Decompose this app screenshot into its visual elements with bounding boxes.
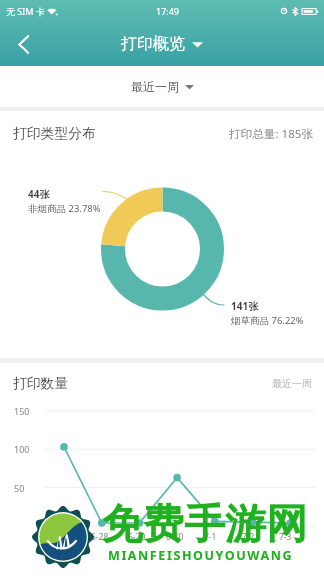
staticText: 非烟商品 23.78% bbox=[28, 202, 101, 215]
staticText: 141张 bbox=[231, 299, 259, 313]
staticText: 最近一周 bbox=[131, 79, 179, 94]
staticText: 打印概览 bbox=[121, 34, 185, 54]
staticText: 6-28 bbox=[91, 531, 109, 543]
staticText: 44张 bbox=[28, 187, 50, 201]
staticText: 免费手游网 bbox=[102, 499, 307, 551]
staticText: 150 bbox=[14, 405, 30, 417]
staticText: 7-3 bbox=[279, 531, 292, 543]
staticText: 6-29 bbox=[128, 531, 146, 543]
staticText: 7-2 bbox=[242, 531, 255, 543]
staticText: 无 SIM 卡 bbox=[6, 5, 45, 17]
button[interactable]: 打印概览 bbox=[121, 34, 203, 54]
staticText: 6-30 bbox=[166, 531, 184, 543]
staticText: MIANFEISHOUYOUWANG bbox=[108, 547, 294, 564]
staticText: 50 bbox=[14, 482, 25, 494]
staticText: 打印数量 bbox=[13, 375, 69, 392]
staticText: 6-27 bbox=[53, 531, 71, 543]
staticText: 7-1 bbox=[204, 531, 217, 543]
button[interactable]: 最近一周 bbox=[131, 79, 194, 94]
staticText: 打印总量: 185张 bbox=[229, 126, 313, 142]
staticText: 最近一周 bbox=[272, 377, 312, 390]
staticText: 100 bbox=[14, 443, 30, 455]
staticText: 17:49 bbox=[156, 5, 180, 17]
staticText: 烟草商品 76.22% bbox=[231, 314, 304, 327]
button[interactable]: Back bbox=[0, 22, 46, 66]
staticText: 打印类型分布 bbox=[13, 125, 96, 142]
